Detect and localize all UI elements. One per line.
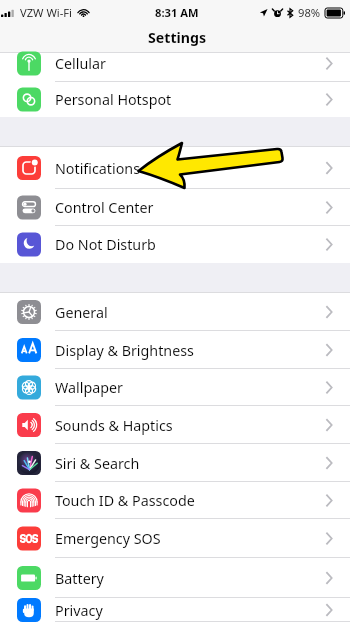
- button[interactable]: Wallpaper: [0, 369, 350, 406]
- button[interactable]: Battery: [0, 558, 350, 598]
- staticText: Battery: [55, 569, 104, 588]
- button[interactable]: Personal Hotspot: [0, 82, 350, 117]
- button[interactable]: General: [0, 293, 350, 331]
- staticText: Touch ID & Passcode: [55, 491, 195, 510]
- button[interactable]: Control Center: [0, 189, 350, 226]
- staticText: Emergency SOS: [55, 529, 161, 548]
- staticText: 8:31 AM: [155, 5, 199, 20]
- button[interactable]: Notifications: [0, 147, 350, 189]
- staticText: Notifications: [55, 159, 141, 178]
- button[interactable]: Sounds & Haptics: [0, 406, 350, 444]
- staticText: 98%: [298, 5, 321, 20]
- staticText: Do Not Disturb: [55, 235, 156, 254]
- staticText: Privacy: [55, 601, 103, 620]
- button[interactable]: Display & Brightness: [0, 331, 350, 369]
- staticText: Display & Brightness: [55, 341, 194, 360]
- button[interactable]: Siri & Search: [0, 444, 350, 482]
- staticText: Settings: [148, 28, 207, 47]
- staticText: Control Center: [55, 198, 154, 217]
- button[interactable]: Emergency SOS: [0, 519, 350, 558]
- staticText: Sounds & Haptics: [55, 416, 173, 435]
- button[interactable]: Cellular: [0, 53, 350, 82]
- staticText: Personal Hotspot: [55, 90, 172, 109]
- staticText: Cellular: [55, 54, 106, 73]
- button[interactable]: Do Not Disturb: [0, 226, 350, 263]
- staticText: VZW Wi-Fi: [20, 5, 73, 20]
- staticText: Wallpaper: [55, 378, 123, 397]
- staticText: Siri & Search: [55, 454, 140, 473]
- button[interactable]: Touch ID & Passcode: [0, 482, 350, 519]
- staticText: General: [55, 303, 108, 322]
- button[interactable]: Privacy: [0, 598, 350, 622]
